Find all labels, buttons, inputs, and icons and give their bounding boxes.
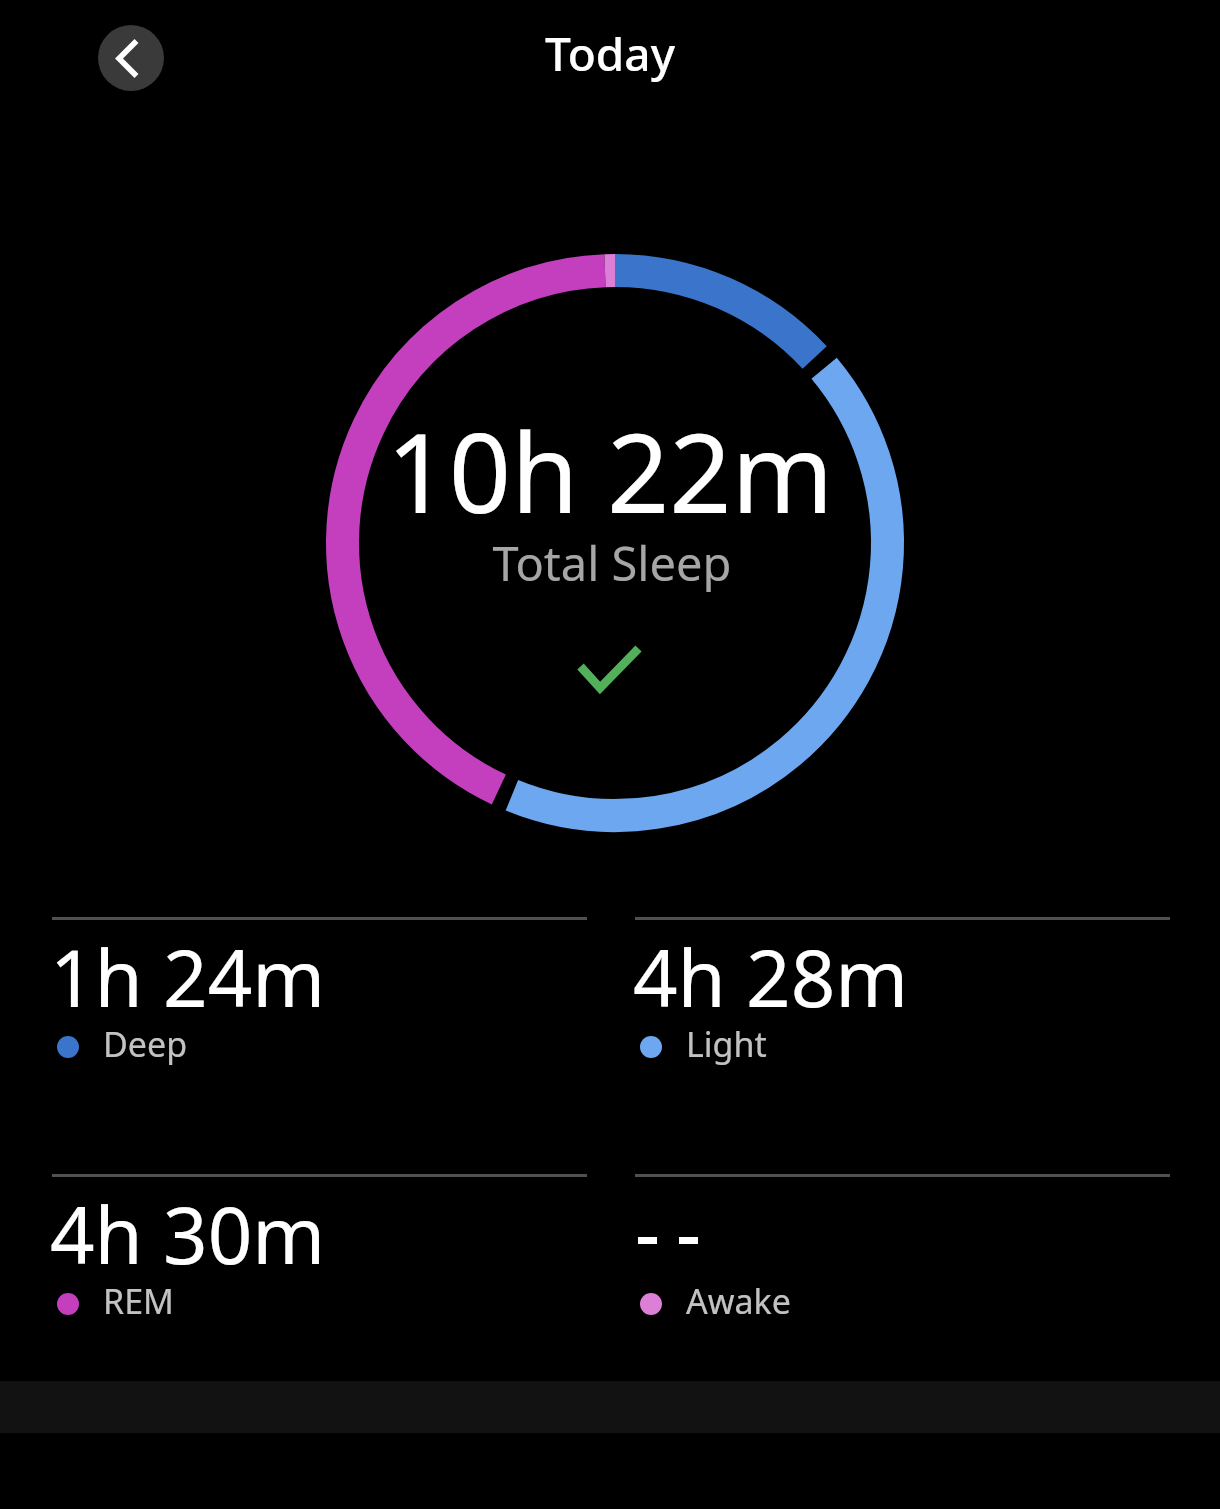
- button[interactable]: 1h 24m: [52, 917, 587, 1167]
- staticText: 4h 28m: [633, 924, 909, 1030]
- button[interactable]: 4h 28m: [635, 917, 1170, 1167]
- staticText: 10h 22m: [0, 396, 1220, 544]
- staticText: Light: [686, 1021, 767, 1067]
- button[interactable]: [98, 25, 164, 91]
- button[interactable]: 4h 30m: [52, 1174, 587, 1424]
- staticText: Total Sleep: [2, 531, 1220, 595]
- staticText: Awake: [686, 1278, 791, 1324]
- staticText: 1h 24m: [50, 924, 326, 1030]
- staticText: REM: [103, 1278, 174, 1324]
- staticText: Deep: [103, 1021, 188, 1067]
- button[interactable]: Awake: [635, 1174, 1170, 1424]
- staticText: Today: [0, 22, 1220, 85]
- staticText: 4h 30m: [50, 1181, 326, 1287]
